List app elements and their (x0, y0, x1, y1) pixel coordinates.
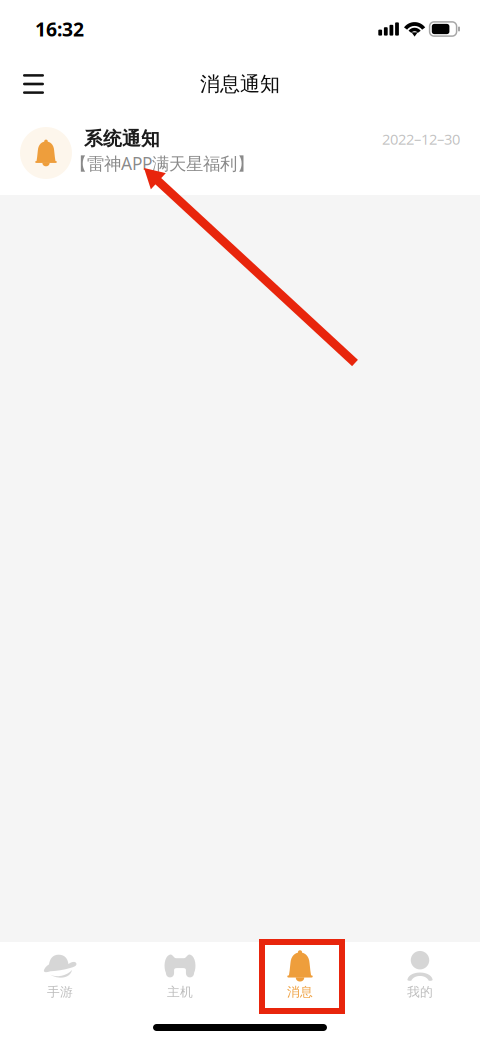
button[interactable]: 手游 (0, 937, 120, 1009)
staticText: 系统通知 (84, 127, 160, 150)
staticText: 16:32 (35, 16, 84, 42)
button[interactable]: Menu (10, 58, 57, 110)
button[interactable]: 主机 (120, 937, 240, 1009)
staticText: 消息 (287, 984, 313, 1000)
staticText: 我的 (407, 984, 433, 1000)
staticText: 消息通知 (200, 71, 280, 97)
button[interactable]: 系统通知 (0, 110, 480, 195)
button[interactable]: 消息 (240, 937, 360, 1009)
button[interactable]: 我的 (360, 937, 480, 1009)
staticText: 2022–12–30 (382, 129, 460, 149)
staticText: 手游 (47, 984, 73, 1000)
staticText: 主机 (167, 984, 193, 1000)
staticText: 【雷神APP满天星福利】 (70, 151, 254, 175)
